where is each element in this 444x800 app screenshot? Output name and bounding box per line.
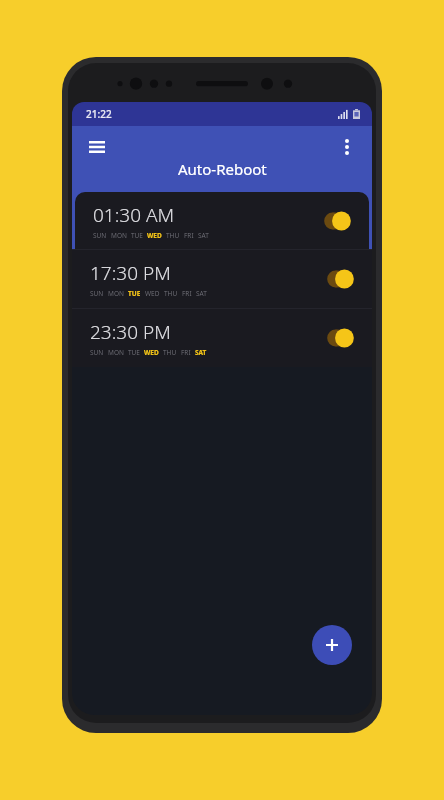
staticText: FRI [181,348,191,357]
staticText: TUE [128,289,141,298]
button[interactable]: 23:30 PM [72,309,372,367]
staticText: 23:30 PM [90,319,171,345]
staticText: FRI [184,231,194,240]
button[interactable]: Menu [80,130,114,164]
staticText: SUN [90,289,104,298]
button[interactable]: Add alarm [312,625,352,665]
staticText: SAT [196,289,207,298]
staticText: WED [145,289,160,298]
staticText: THU [163,348,177,357]
staticText: SUN [93,231,107,240]
staticText: MON [108,289,124,298]
button[interactable]: Toggle alarm 23:30 PM [322,328,356,348]
staticText: Auto-Reboot [178,159,267,179]
staticText: MON [111,231,127,240]
staticText: FRI [182,289,192,298]
button[interactable]: 01:30 AM [75,192,369,249]
staticText: THU [166,231,180,240]
button[interactable]: More options [330,130,364,164]
staticText: MON [108,348,124,357]
staticText: SAT [195,348,207,357]
button[interactable]: 17:30 PM [72,250,372,308]
staticText: 21:22 [86,107,112,121]
button[interactable]: Toggle alarm 17:30 PM [322,269,356,289]
staticText: 01:30 AM [93,202,175,228]
button[interactable]: Toggle alarm 01:30 AM [319,211,353,231]
staticText: TUE [131,231,143,240]
staticText: THU [164,289,178,298]
staticText: TUE [128,348,140,357]
staticText: SAT [198,231,209,240]
staticText: 17:30 PM [90,260,171,286]
staticText: WED [147,231,162,240]
staticText: WED [144,348,159,357]
staticText: SUN [90,348,104,357]
